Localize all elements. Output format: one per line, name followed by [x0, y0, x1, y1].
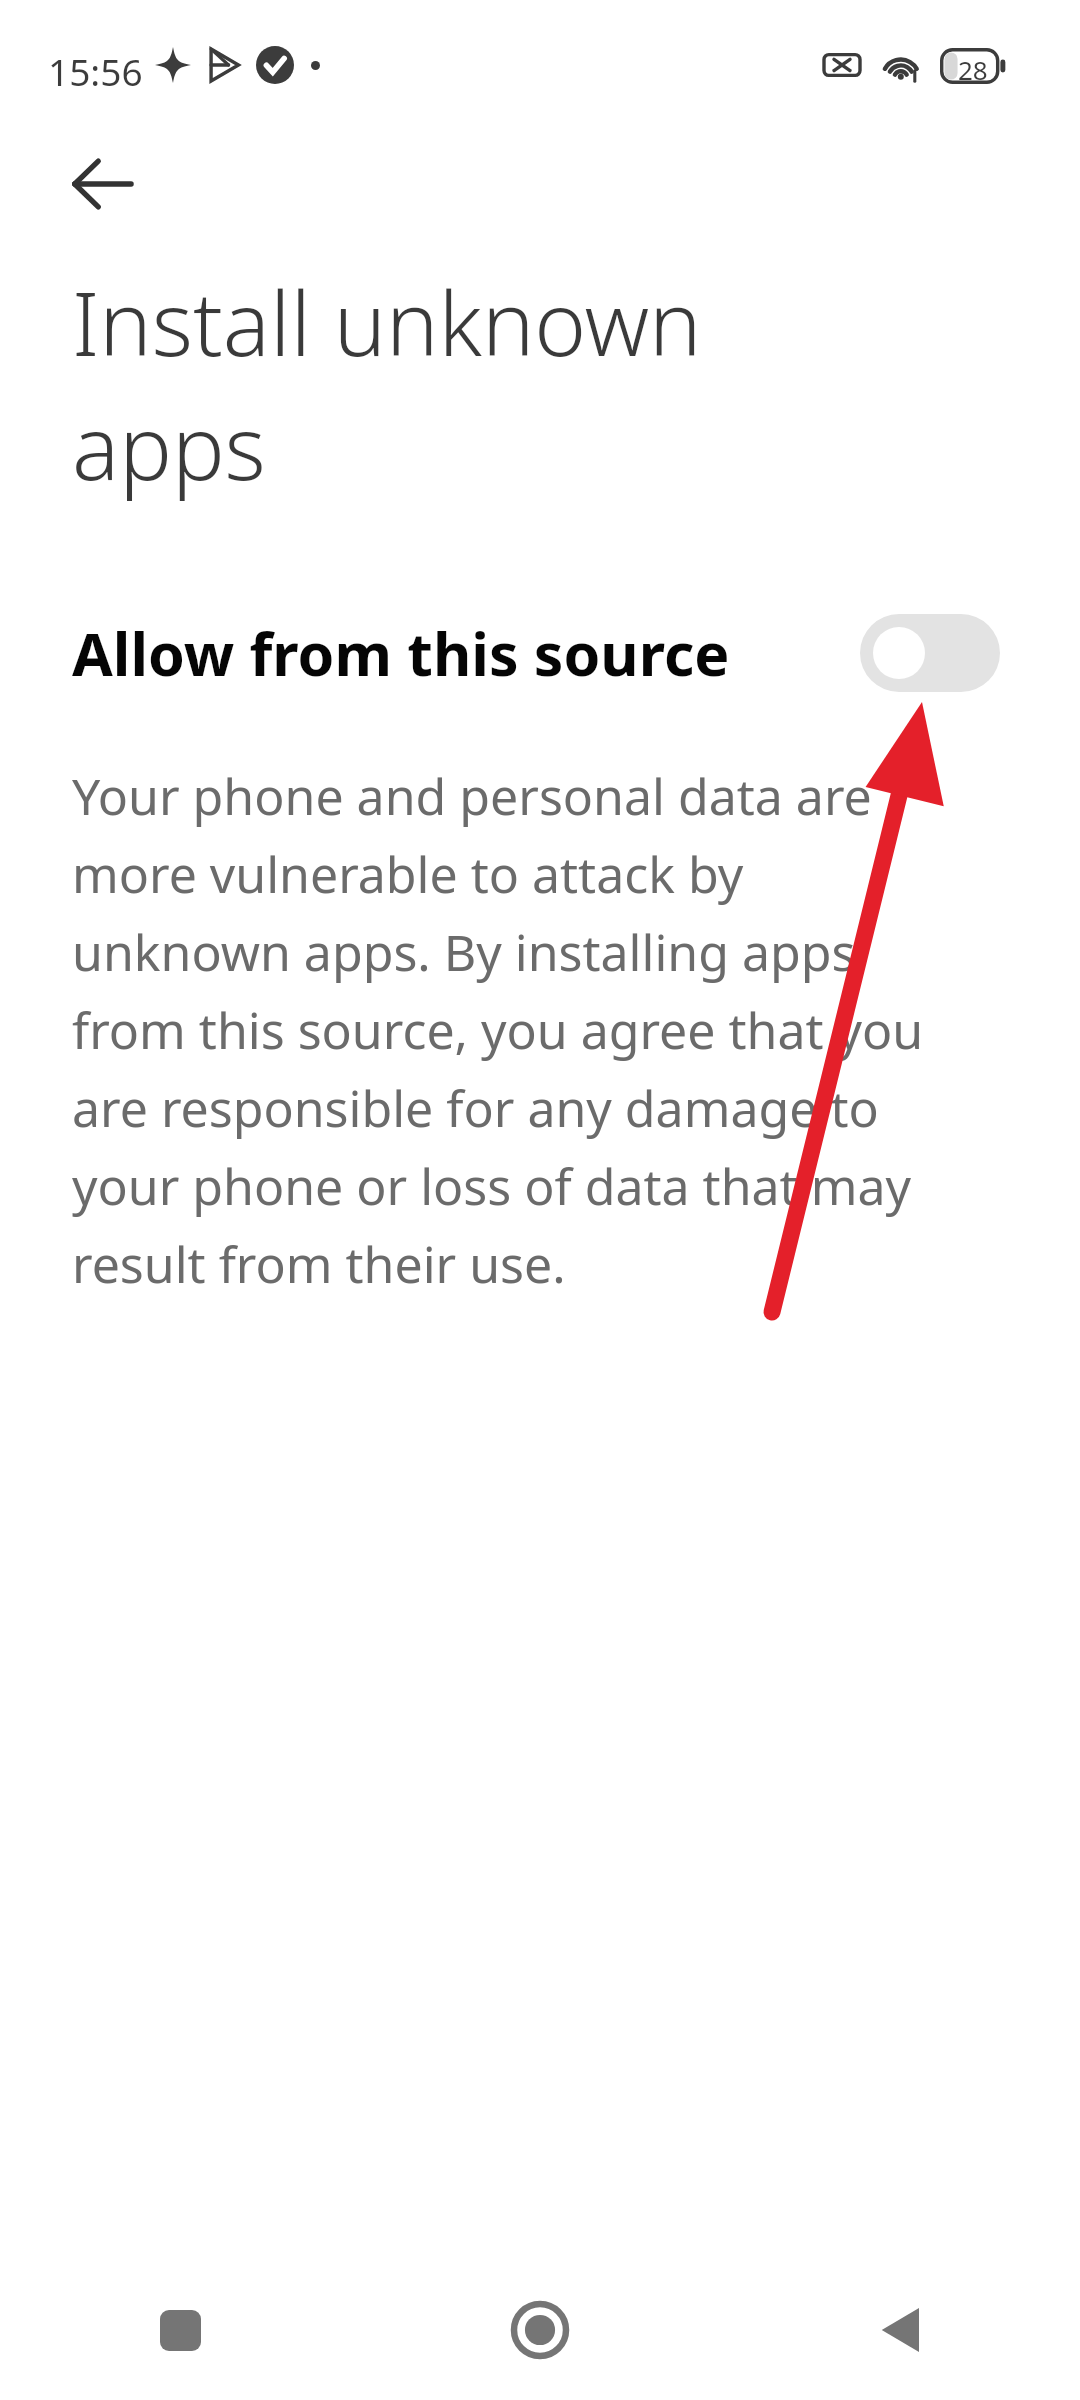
staticText: Allow from this source — [72, 613, 860, 693]
staticText: Your phone and personal data are more vu… — [72, 762, 924, 1298]
button[interactable]: Home — [360, 2260, 720, 2400]
button[interactable]: Recent apps — [0, 2260, 360, 2400]
button[interactable]: Back — [720, 2260, 1080, 2400]
button[interactable]: Back — [48, 130, 156, 238]
staticText: 28 — [958, 52, 988, 87]
staticText: Install unknown apps — [72, 262, 702, 506]
staticText: 15:56 — [48, 46, 143, 96]
button[interactable]: Allow from this source — [0, 580, 1080, 725]
